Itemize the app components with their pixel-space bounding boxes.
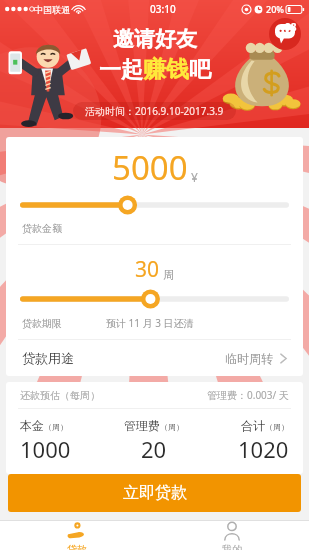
staticText: 吧 bbox=[189, 56, 211, 84]
staticText: 管理费：0.003/ 天 bbox=[207, 388, 289, 402]
staticText: 我的 bbox=[222, 543, 242, 550]
staticText: 合计 bbox=[241, 418, 265, 433]
staticText: 03:10 bbox=[150, 2, 176, 16]
staticText: 预计 11 月 3 日还清 bbox=[106, 316, 194, 330]
staticText: 立即贷款 bbox=[123, 483, 187, 503]
staticText: 中国联通 bbox=[34, 4, 70, 15]
staticText: 赚钱 bbox=[143, 55, 189, 84]
staticText: 贷款 bbox=[67, 543, 87, 550]
staticText: 1020 bbox=[238, 434, 289, 464]
staticText: 98 bbox=[285, 20, 297, 34]
staticText: 一起 bbox=[99, 56, 143, 84]
staticText: 贷款金额 bbox=[22, 222, 62, 235]
button[interactable]: 贷款 bbox=[0, 521, 154, 550]
staticText: 还款预估（每周） bbox=[20, 389, 100, 402]
staticText: 本金 bbox=[20, 418, 44, 433]
button[interactable]: 贷款用途 bbox=[6, 340, 303, 376]
staticText: 管理费 bbox=[124, 418, 160, 433]
staticText: 周 bbox=[163, 268, 174, 282]
staticText: 贷款用途 bbox=[22, 350, 74, 366]
staticText: 贷款期限 bbox=[22, 317, 62, 330]
staticText: 5000 bbox=[112, 145, 188, 190]
staticText: ¥ bbox=[191, 169, 198, 185]
staticText: （周） bbox=[44, 422, 68, 432]
staticText: 1000 bbox=[20, 434, 71, 464]
staticText: 30 bbox=[135, 255, 160, 284]
staticText: （周） bbox=[265, 422, 289, 432]
button[interactable]: 立即贷款 bbox=[8, 474, 301, 512]
staticText: 20 bbox=[141, 434, 167, 464]
staticText: 20% bbox=[266, 3, 284, 15]
staticText: 邀请好友 bbox=[113, 26, 197, 52]
staticText: （周） bbox=[160, 422, 184, 432]
button[interactable]: 消息 bbox=[269, 18, 301, 50]
button[interactable]: 我的 bbox=[154, 521, 309, 550]
staticText: 活动时间：2016.9.10-2017.3.9 bbox=[85, 104, 224, 118]
staticText: 临时周转 bbox=[225, 351, 273, 366]
